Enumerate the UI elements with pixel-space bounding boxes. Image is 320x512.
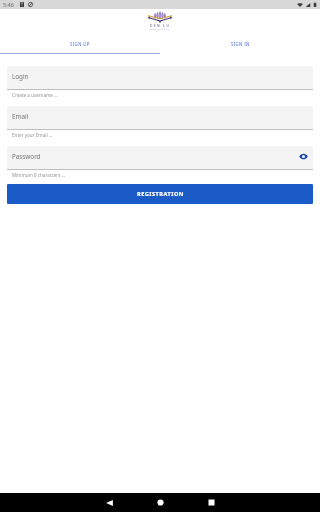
button[interactable]: SIGN UP [0, 31, 160, 53]
staticText: 5:46 [3, 1, 14, 8]
button[interactable]: Password [7, 146, 313, 169]
button[interactable]: Recent apps [189, 493, 233, 512]
staticText: DEN LU [150, 23, 171, 28]
button[interactable]: Home [138, 493, 182, 512]
button[interactable]: Show password [297, 150, 309, 162]
button[interactable]: Email [7, 106, 313, 129]
staticText: Create a username ... [12, 92, 58, 98]
button[interactable]: SIGN IN [160, 31, 320, 53]
button[interactable]: Login [7, 66, 313, 89]
staticText: FOOD TRADE CO. [149, 28, 171, 31]
staticText: Minimum 8 characters ... [12, 172, 66, 178]
button[interactable]: REGISTRATION [7, 184, 313, 204]
button[interactable]: Back [87, 493, 131, 512]
staticText: Enter your Email ... [12, 132, 53, 138]
staticText: SIGN IN [231, 41, 250, 47]
staticText: REGISTRATION [137, 190, 184, 198]
staticText: Password [12, 152, 41, 161]
staticText: Login [12, 72, 29, 81]
staticText: Email [12, 112, 29, 121]
staticText: SIGN UP [70, 41, 90, 47]
